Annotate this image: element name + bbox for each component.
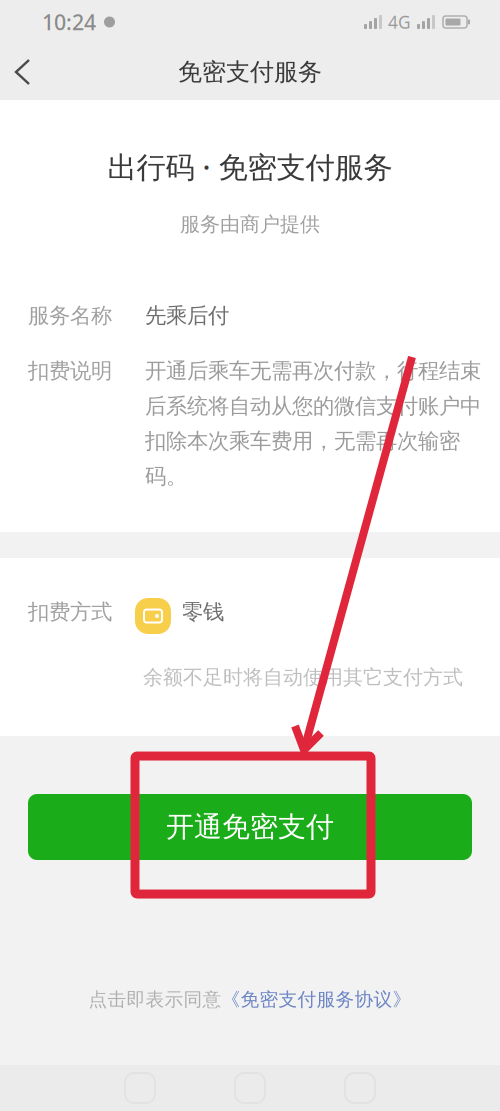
staticText: 余额不足时将自动使用其它支付方式 xyxy=(143,665,463,690)
staticText: 《免密支付服务协议》 xyxy=(221,988,411,1011)
staticText: 先乘后付 xyxy=(145,302,229,329)
button[interactable]: Back xyxy=(345,1073,375,1103)
button[interactable]: Home xyxy=(235,1073,265,1103)
staticText: 出行码 · 免密支付服务 xyxy=(107,147,392,186)
staticText: 开通后乘车无需再次付款，行程结束后系统将自动从您的微信支付账户中扣除本次乘车费用… xyxy=(145,358,481,489)
button[interactable]: 开通免密支付 xyxy=(28,794,472,860)
button[interactable]: Recents xyxy=(125,1073,155,1103)
staticText: 服务名称 xyxy=(28,302,112,329)
staticText: 免密支付服务 xyxy=(178,57,322,87)
staticText: 零钱 xyxy=(182,599,224,625)
button[interactable]: Back xyxy=(0,44,53,100)
staticText: 扣费方式 xyxy=(28,599,112,625)
staticText: 服务由商户提供 xyxy=(180,212,320,237)
staticText: 10:24 xyxy=(42,8,96,36)
staticText: 开通免密支付 xyxy=(166,810,334,844)
staticText: 4G xyxy=(388,10,411,33)
staticText: 扣费说明 xyxy=(28,358,112,384)
button[interactable]: 《免密支付服务协议》 xyxy=(221,988,411,1011)
staticText: 点击即表示同意 xyxy=(88,988,221,1011)
